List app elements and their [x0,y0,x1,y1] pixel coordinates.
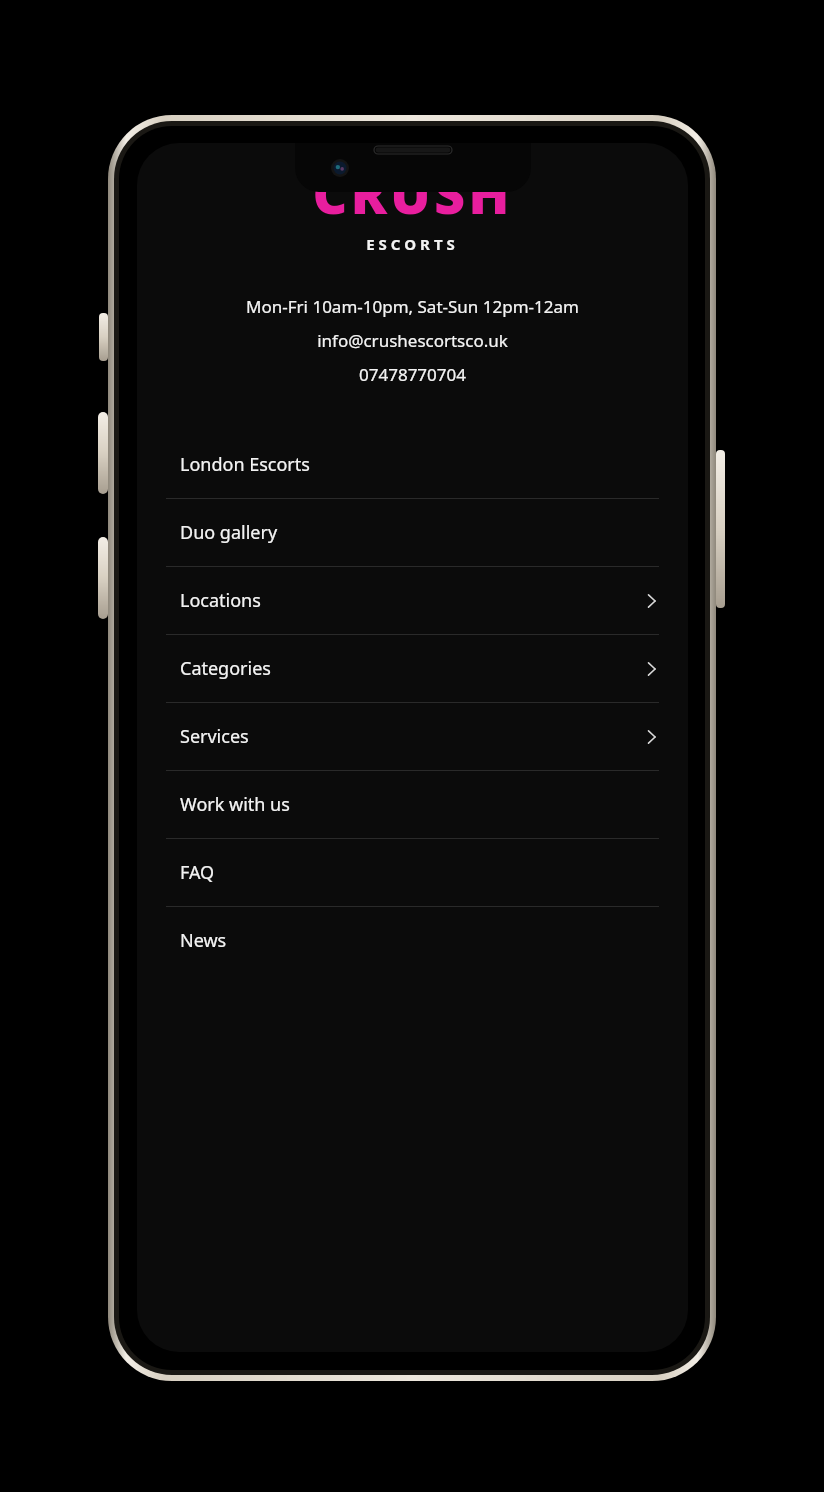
staticText: News [180,928,227,953]
staticText: London Escorts [180,452,310,477]
staticText: ESCORTS [366,234,459,254]
staticText: info@crushescortsco.uk [317,329,508,352]
button[interactable]: London Escorts [137,431,688,498]
button[interactable]: Locations [137,567,688,634]
staticText: Categories [180,656,271,681]
other: Expand Locations [645,590,659,612]
other: Expand Services [645,726,659,748]
button[interactable]: Duo gallery [137,499,688,566]
button[interactable]: Work with us [137,771,688,838]
staticText: Mon-Fri 10am-10pm, Sat-Sun 12pm-12am [246,295,579,318]
button[interactable]: Services [137,703,688,770]
staticText: 07478770704 [359,363,466,386]
other: Expand Categories [645,658,659,680]
staticText: Services [180,724,249,749]
button[interactable]: Categories [137,635,688,702]
button[interactable]: News [137,907,688,974]
staticText: FAQ [180,860,215,885]
staticText: Duo gallery [180,520,278,545]
staticText: CRUSH [312,156,513,230]
button[interactable]: FAQ [137,839,688,906]
staticText: Locations [180,588,261,613]
staticText: Work with us [180,792,290,817]
